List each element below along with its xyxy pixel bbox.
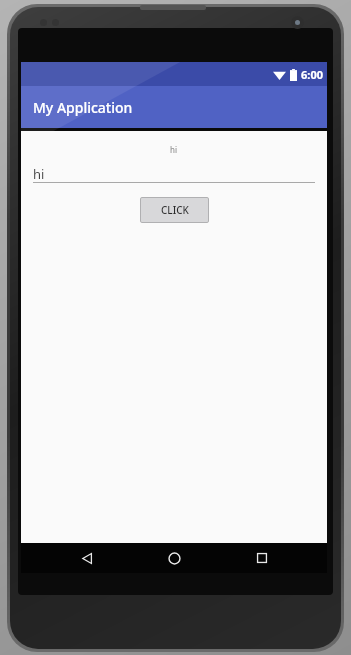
button[interactable]: hi xyxy=(33,165,315,183)
staticText: CLICK xyxy=(161,203,189,217)
button[interactable]: Home xyxy=(152,543,196,573)
button[interactable]: CLICK xyxy=(140,197,209,223)
button[interactable]: Recent apps xyxy=(240,543,284,573)
staticText: hi xyxy=(170,144,178,155)
staticText: 6:00 xyxy=(301,67,323,82)
staticText: hi xyxy=(33,165,45,182)
staticText: My Application xyxy=(33,98,133,117)
button[interactable]: Back xyxy=(65,543,109,573)
